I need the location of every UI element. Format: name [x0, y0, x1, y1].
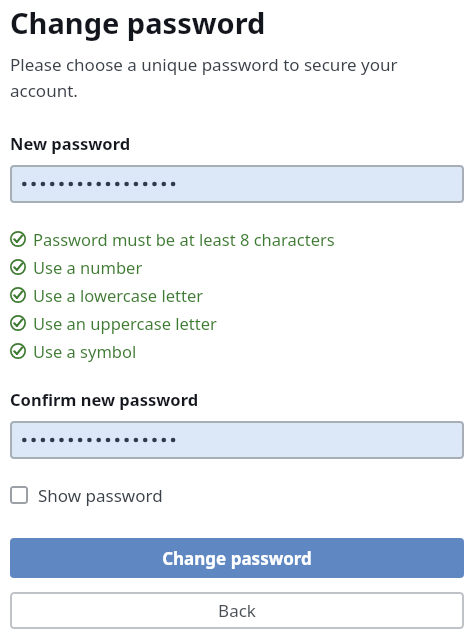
staticText: Password must be at least 8 characters — [33, 228, 335, 250]
staticText: Change password — [162, 547, 312, 570]
staticText: Use an uppercase letter — [33, 312, 217, 334]
staticText: Show password — [38, 484, 163, 507]
button[interactable]: Show password — [10, 483, 163, 507]
staticText: Please choose a unique password to secur… — [10, 53, 464, 102]
button[interactable]: Password input — [10, 165, 464, 203]
staticText: Change password — [10, 3, 266, 42]
button[interactable]: Password input — [10, 421, 464, 459]
staticText: Use a lowercase letter — [33, 284, 204, 306]
staticText: New password — [10, 132, 131, 154]
button[interactable]: Change password — [10, 538, 464, 578]
staticText: Use a number — [33, 256, 143, 278]
button[interactable]: Back — [10, 592, 464, 629]
staticText: Back — [218, 599, 256, 622]
staticText: Use a symbol — [33, 340, 137, 362]
staticText: Confirm new password — [10, 388, 199, 410]
